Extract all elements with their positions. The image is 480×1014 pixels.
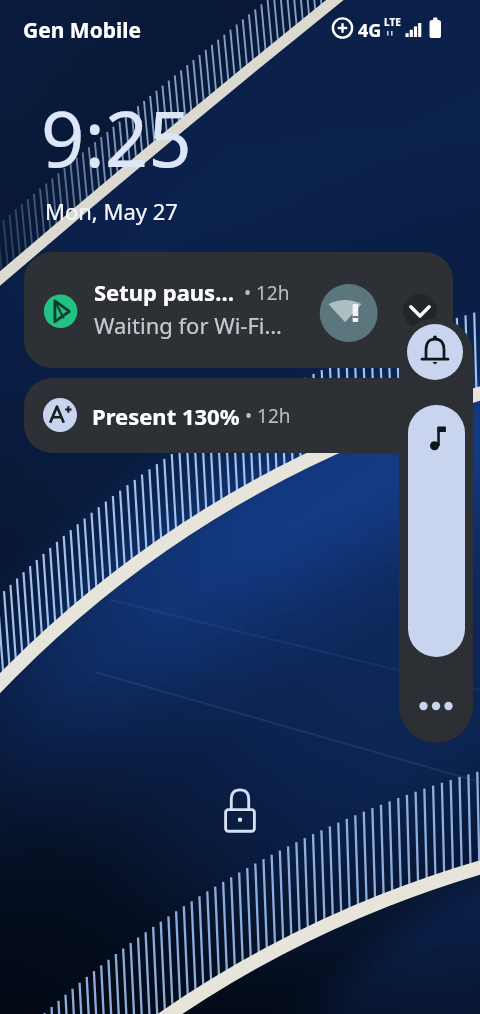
button[interactable]: Expand notification	[403, 294, 437, 328]
staticText: 4G	[358, 18, 382, 43]
staticText: Setup paus…	[94, 277, 234, 307]
staticText: 9:25	[41, 86, 192, 190]
button[interactable]: Ring mode	[407, 324, 463, 380]
button[interactable]: Present 130%	[24, 378, 453, 453]
staticText: • 12h	[240, 403, 291, 429]
staticText: Present 130%	[92, 401, 240, 431]
button[interactable]: Media volume	[408, 405, 465, 657]
staticText: • 12h	[234, 280, 290, 306]
staticText: LTE	[384, 15, 401, 29]
staticText: Waiting for Wi-Fi…	[94, 310, 282, 340]
button[interactable]: Locked	[220, 792, 260, 832]
button[interactable]: More volume settings	[399, 686, 473, 726]
staticText: Gen Mobile	[23, 16, 142, 45]
button[interactable]: Setup paus…	[24, 252, 453, 368]
staticText: Mon, May 27	[45, 196, 178, 226]
